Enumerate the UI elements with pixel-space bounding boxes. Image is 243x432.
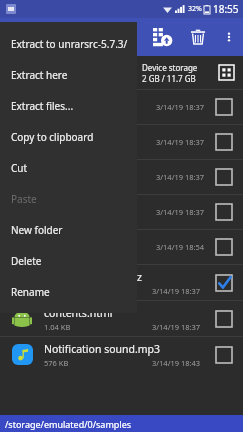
staticText: Rename [11, 285, 50, 299]
button[interactable]: 3/14/19 18:37 [0, 90, 243, 124]
button[interactable]: Select unrarsrc-5.7.3.tar.gz [205, 265, 243, 300]
button[interactable]: Grid view [209, 56, 243, 89]
staticText: Copy to clipboard [11, 130, 94, 144]
staticText: Delete [11, 254, 42, 268]
button[interactable]: Paste [0, 183, 137, 214]
button[interactable]: Select [205, 230, 243, 264]
button[interactable]: unrarsrc-5.7.3.tar.gz [0, 265, 243, 300]
staticText: Extract here [11, 68, 68, 82]
button[interactable]: Delete [181, 20, 215, 54]
staticText: 3/14/19 18:43 [152, 358, 201, 368]
staticText: 3/14/19 18:37 [156, 172, 205, 182]
staticText: New folder [11, 223, 63, 237]
staticText: 576 KB [44, 358, 69, 368]
staticText: Device storage [142, 62, 198, 73]
staticText: 3/14/19 18:54 [156, 242, 205, 252]
button[interactable]: Select [205, 90, 243, 124]
button[interactable]: Select [205, 195, 243, 229]
button[interactable]: Extract files... [0, 90, 137, 121]
button[interactable]: Delete [0, 245, 137, 276]
staticText: 3/14/19 18:37 [152, 322, 201, 332]
button[interactable]: Extract to unrarsrc-5.7.3/ [0, 28, 137, 59]
button[interactable]: Select [205, 160, 243, 194]
button[interactable]: /storage/emulated/0/samples [0, 415, 243, 432]
button[interactable]: Select Notification sound.mp3 [205, 337, 243, 372]
staticText: contents.html [44, 306, 113, 320]
button[interactable]: Select contents.html [205, 301, 243, 336]
button[interactable]: Copy to clipboard [0, 121, 137, 152]
button[interactable]: Extract here [0, 59, 137, 90]
button[interactable]: New folder [0, 214, 137, 245]
button[interactable]: 3/14/19 18:37 [0, 160, 243, 194]
button[interactable]: Notification sound.mp3 [0, 337, 243, 372]
button[interactable]: 3/14/19 18:54 [0, 230, 243, 264]
button[interactable]: More options [215, 23, 243, 51]
button[interactable]: Select [205, 125, 243, 159]
button[interactable]: contents.html [0, 301, 243, 336]
staticText: 3/14/19 18:37 [156, 207, 205, 217]
staticText: Paste [11, 192, 37, 206]
staticText: 223 KB [44, 286, 69, 296]
button[interactable]: Cut [0, 152, 137, 183]
button[interactable]: Device storage [0, 56, 243, 89]
staticText: 1.04 KB [44, 322, 71, 332]
staticText: Notification sound.mp3 [44, 342, 161, 356]
staticText: Extract files... [11, 99, 74, 113]
staticText: Extract to unrarsrc-5.7.3/ [11, 37, 128, 51]
staticText: 18:55 [213, 2, 239, 16]
button[interactable]: 3/14/19 18:37 [0, 195, 243, 229]
staticText: unrarsrc-5.7.3.tar.gz [44, 270, 142, 284]
staticText: Cut [11, 161, 28, 175]
staticText: 3/14/19 18:37 [156, 102, 205, 112]
staticText: 3/14/19 18:37 [156, 137, 205, 147]
staticText: 3/14/19 18:37 [152, 286, 201, 296]
staticText: /storage/emulated/0/samples [5, 418, 132, 430]
button[interactable]: Extract [143, 18, 181, 56]
button[interactable]: Rename [0, 276, 137, 307]
staticText: 32% [188, 4, 202, 14]
button[interactable]: 3/14/19 18:37 [0, 125, 243, 159]
staticText: 2 GB / 11.7 GB [142, 73, 196, 84]
